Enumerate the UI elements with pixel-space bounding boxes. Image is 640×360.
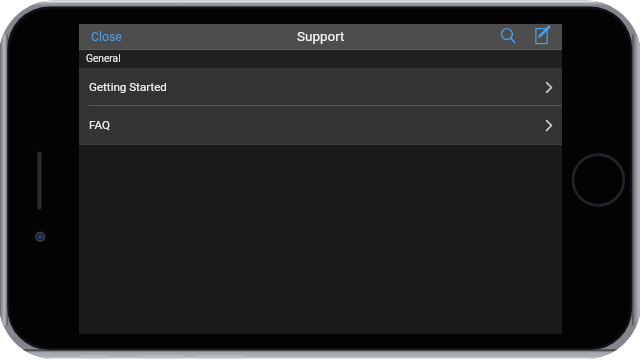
staticText: General <box>86 53 121 65</box>
button[interactable]: Close <box>79 26 132 48</box>
button[interactable]: Compose <box>529 24 555 49</box>
button[interactable]: Search <box>494 24 520 49</box>
staticText: Support <box>297 29 345 45</box>
button[interactable]: Getting Started <box>79 68 562 106</box>
staticText: Getting Started <box>89 80 167 94</box>
staticText: FAQ <box>89 118 110 132</box>
button[interactable]: FAQ <box>79 106 562 144</box>
staticText: Close <box>91 30 122 44</box>
